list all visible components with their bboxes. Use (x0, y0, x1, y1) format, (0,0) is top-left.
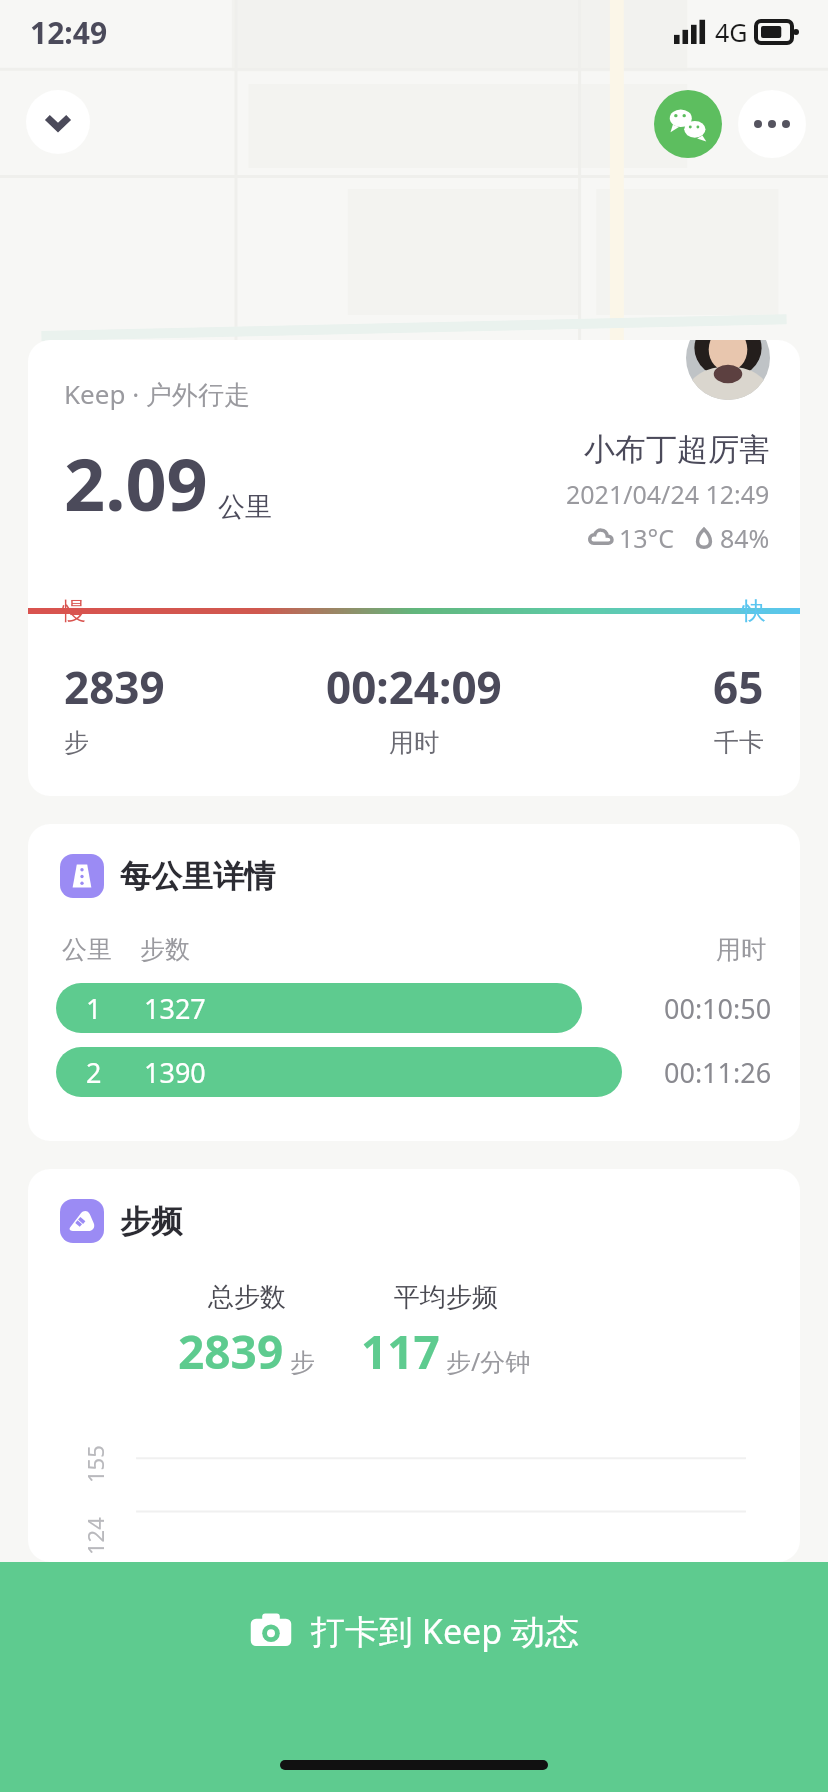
button[interactable]: Collapse (26, 90, 90, 154)
staticText: 12:49 (30, 12, 108, 53)
button[interactable]: More options (738, 90, 806, 158)
staticText: 84% (720, 521, 770, 555)
staticText: 1327 (144, 990, 206, 1027)
staticText: 65 (713, 657, 764, 717)
staticText: 117 (361, 1320, 440, 1383)
button[interactable]: 每公里详情 (28, 824, 800, 1141)
staticText: 打卡到 Keep 动态 (311, 1608, 579, 1654)
staticText: Keep · 户外行走 (64, 376, 250, 412)
staticText: 2021/04/24 12:49 (566, 477, 770, 511)
staticText: 4G (715, 15, 748, 49)
button[interactable]: 打卡到 Keep 动态 (0, 1562, 828, 1792)
staticText: 步 (64, 727, 89, 758)
button[interactable]: Share to WeChat (654, 90, 722, 158)
staticText: 155 (80, 1445, 110, 1483)
staticText: 2839 (178, 1320, 284, 1383)
staticText: 00:11:26 (664, 1054, 772, 1091)
staticText: 1390 (144, 1054, 206, 1091)
staticText: 2839 (64, 657, 165, 717)
staticText: 步频 (120, 1202, 182, 1241)
staticText: 步数 (140, 934, 190, 965)
staticText: 每公里详情 (120, 857, 275, 896)
staticText: 步/分钟 (446, 1344, 531, 1378)
staticText: 步 (290, 1347, 315, 1378)
staticText: 13°C (619, 521, 675, 555)
staticText: 总步数 (208, 1281, 286, 1314)
staticText: 小布丁超厉害 (584, 430, 770, 469)
staticText: 00:24:09 (326, 657, 502, 717)
staticText: 平均步频 (394, 1281, 498, 1314)
staticText: 1 (86, 990, 102, 1027)
button[interactable]: Keep · 户外行走 (28, 340, 800, 796)
staticText: 公里 (218, 490, 272, 524)
button[interactable]: 步频 (28, 1169, 800, 1562)
staticText: 00:10:50 (664, 990, 772, 1027)
staticText: 2.09 (64, 434, 208, 532)
staticText: 快 (742, 596, 766, 626)
staticText: 2 (86, 1054, 102, 1091)
staticText: 千卡 (714, 727, 764, 758)
staticText: 用时 (716, 934, 766, 965)
staticText: 124 (80, 1517, 110, 1555)
staticText: 用时 (389, 727, 439, 758)
staticText: 慢 (62, 596, 86, 626)
staticText: 公里 (62, 934, 112, 965)
